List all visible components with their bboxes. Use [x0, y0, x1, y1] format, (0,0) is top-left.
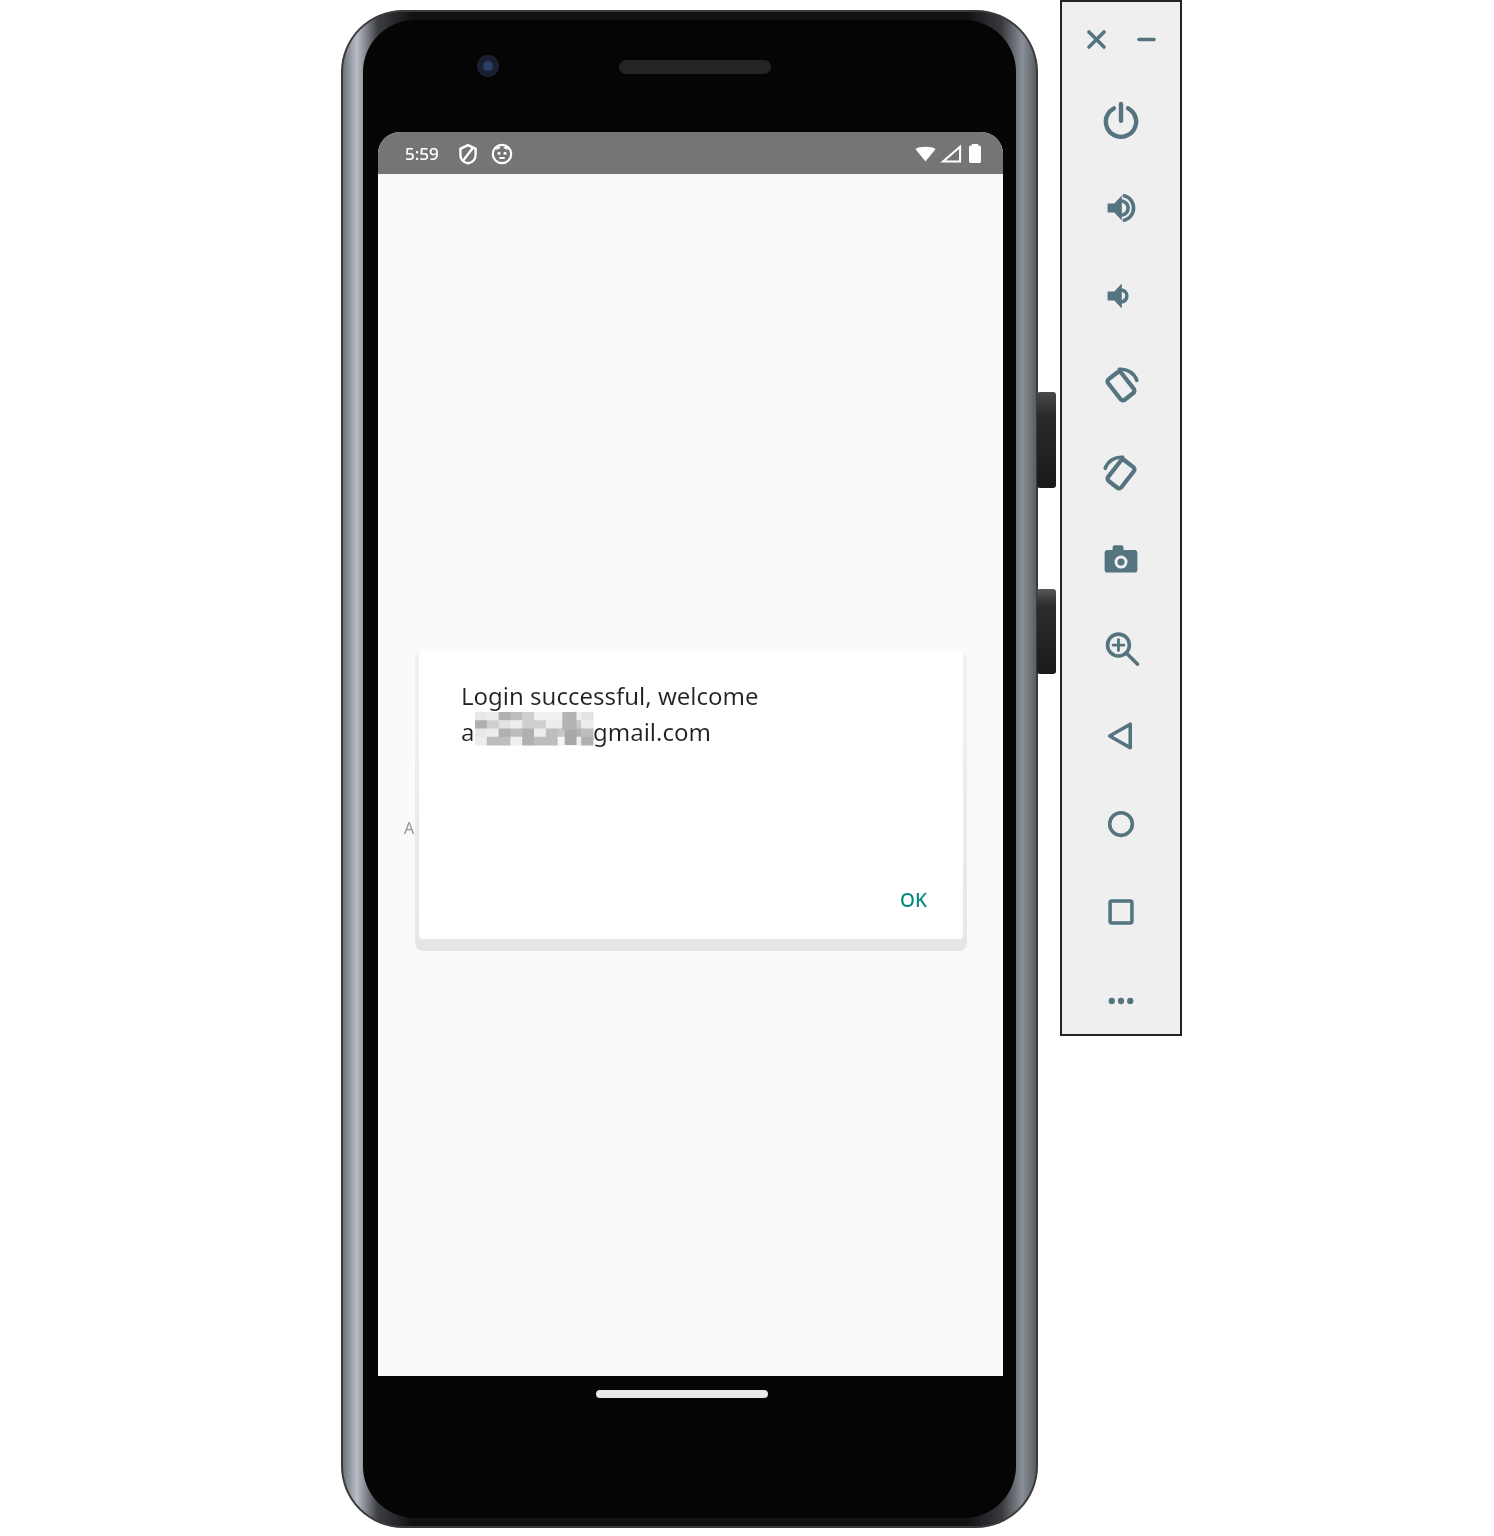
button[interactable]: Overview: [1062, 868, 1180, 956]
button[interactable]: More: [1062, 968, 1180, 1034]
button[interactable]: Back: [1062, 692, 1180, 780]
button[interactable]: Rotate left: [1062, 340, 1180, 428]
button[interactable]: OK: [882, 875, 945, 925]
button[interactable]: Rotate right: [1062, 428, 1180, 516]
staticText: a: [461, 715, 475, 748]
staticText: gmail.com: [593, 715, 711, 748]
button[interactable]: Volume down: [1062, 252, 1180, 340]
button[interactable]: Screenshot: [1062, 516, 1180, 604]
button[interactable]: Volume up: [1062, 164, 1180, 252]
staticText: OK: [900, 887, 927, 913]
button[interactable]: Power: [1062, 76, 1180, 164]
button[interactable]: Close: [1079, 22, 1113, 56]
button[interactable]: Minimize: [1129, 22, 1163, 56]
staticText: 5:59: [405, 142, 439, 165]
button[interactable]: Zoom: [1062, 604, 1180, 692]
button[interactable]: Home: [1062, 780, 1180, 868]
staticText: Login successful, welcome: [461, 679, 759, 712]
staticText: A e.: [404, 817, 1003, 839]
